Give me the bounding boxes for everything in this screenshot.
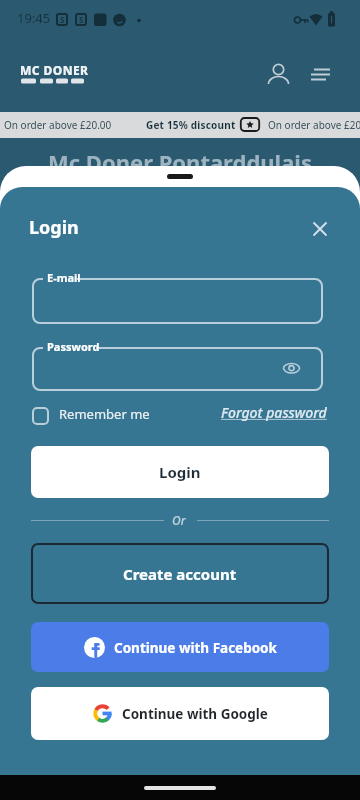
staticText: Create account [123, 564, 237, 584]
button[interactable]: Continue with Facebook [31, 622, 329, 672]
staticText: MC DONER [20, 62, 89, 78]
staticText: S [60, 14, 65, 25]
button[interactable]: Continue with Google [31, 687, 329, 740]
button[interactable] [305, 62, 336, 88]
staticText: Get 15% discount [146, 118, 236, 132]
staticText: Login [159, 462, 201, 482]
staticText: Login [29, 215, 79, 240]
staticText: Forgot password [221, 403, 327, 422]
staticText: On order above £20.00 [4, 118, 112, 132]
staticText: Remember me [59, 405, 150, 423]
staticText: Continue with Google [122, 705, 268, 723]
button[interactable] [32, 278, 323, 324]
button[interactable]: Forgot password [221, 401, 333, 425]
button[interactable]: Create account [31, 543, 329, 604]
button[interactable] [32, 407, 49, 425]
staticText: Continue with Facebook [114, 639, 277, 657]
staticText: On order above £20.0 [268, 118, 360, 132]
staticText: Password [47, 339, 100, 354]
staticText: S [79, 14, 84, 25]
button[interactable] [32, 347, 323, 391]
staticText: Mc Doner Pontarddulais [0, 147, 360, 177]
button[interactable] [306, 215, 334, 243]
staticText: 19:45 [17, 9, 51, 27]
button[interactable] [263, 57, 294, 88]
staticText: Or [172, 512, 186, 528]
button[interactable]: Login [31, 446, 329, 498]
staticText: E-mail [47, 270, 81, 285]
button[interactable] [279, 356, 303, 380]
